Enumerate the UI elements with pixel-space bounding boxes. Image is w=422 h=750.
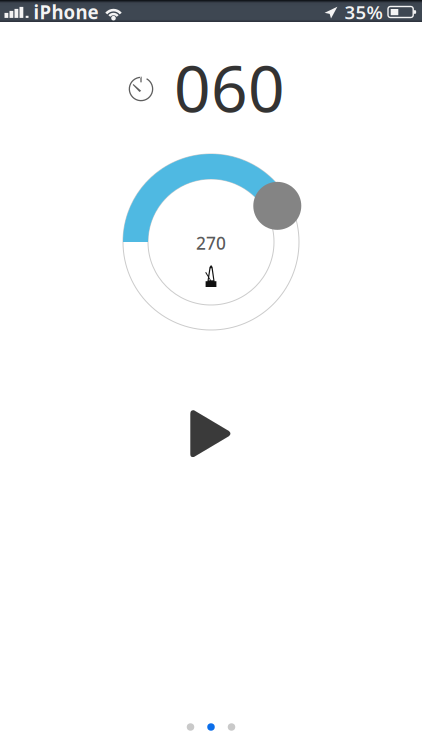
staticText: 35% <box>344 0 382 24</box>
staticText: 270 <box>196 231 226 254</box>
button[interactable]: 060 <box>174 45 285 130</box>
button[interactable]: Page 2, current page <box>207 723 215 731</box>
button[interactable]: Play <box>190 410 232 458</box>
staticText: iPhone <box>33 0 98 24</box>
button[interactable]: Page 3 <box>228 723 235 731</box>
staticText: 060 <box>174 45 285 130</box>
button[interactable]: Tempo dial <box>111 142 311 342</box>
button[interactable]: Page 1 <box>187 723 194 731</box>
button[interactable]: Timer <box>128 76 154 102</box>
